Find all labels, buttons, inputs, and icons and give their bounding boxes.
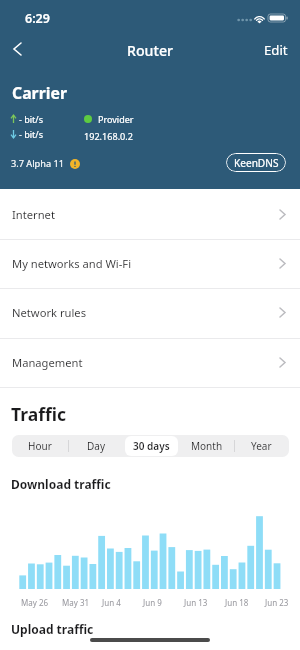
button[interactable]: 30 days	[124, 435, 179, 457]
button[interactable]: Day	[68, 435, 124, 457]
staticText: Router	[0, 41, 300, 60]
staticText: 3.7 Alpha 11	[11, 157, 64, 170]
staticText: Management	[12, 355, 83, 370]
staticText: 192.168.0.2	[84, 130, 133, 142]
button[interactable]: Management	[0, 338, 300, 387]
button[interactable]: Network rules	[0, 288, 300, 337]
staticText: Day	[87, 439, 106, 453]
button[interactable]: Back	[5, 34, 29, 64]
staticText: Network rules	[12, 305, 87, 320]
button[interactable]: Internet	[0, 190, 300, 239]
staticText: Year	[251, 439, 272, 453]
staticText: Jun 13	[184, 597, 208, 608]
staticText: - bit/s	[19, 128, 44, 140]
staticText: Jun 9	[143, 597, 162, 608]
staticText: May 31	[62, 597, 90, 608]
button[interactable]: Month	[179, 435, 234, 457]
staticText: 30 days	[133, 439, 170, 453]
staticText: - bit/s	[19, 113, 44, 125]
button[interactable]: Edit	[258, 37, 294, 63]
staticText: Download traffic	[11, 476, 111, 492]
staticText: 6:29	[25, 10, 50, 27]
staticText: Month	[191, 439, 223, 453]
staticText: Jun 18	[225, 597, 249, 608]
staticText: Jun 4	[102, 597, 121, 608]
staticText: My networks and Wi-Fi	[12, 256, 132, 271]
staticText: Carrier	[12, 82, 67, 104]
staticText: Upload traffic	[11, 621, 94, 637]
staticText: KeenDNS	[234, 156, 279, 170]
button[interactable]: Hour	[12, 435, 68, 457]
staticText: Jun 23	[265, 597, 289, 608]
staticText: May 26	[21, 597, 49, 608]
button[interactable]: Year	[234, 435, 289, 457]
staticText: Provider	[98, 113, 134, 125]
staticText: Edit	[264, 41, 288, 59]
staticText: Hour	[28, 439, 52, 453]
button[interactable]: KeenDNS	[226, 153, 286, 172]
staticText: Internet	[12, 207, 55, 222]
button[interactable]: My networks and Wi-Fi	[0, 239, 300, 288]
staticText: Traffic	[11, 402, 66, 426]
